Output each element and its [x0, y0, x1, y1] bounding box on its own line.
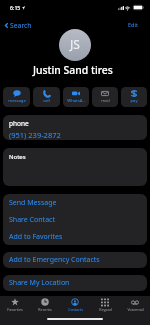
- staticText: 6:15: [10, 4, 21, 11]
- button[interactable]: Message: [3, 87, 30, 107]
- button[interactable]: Notes: [3, 148, 147, 186]
- staticText: Share My Location: [9, 278, 70, 288]
- staticText: phone: [9, 119, 29, 128]
- staticText: message: [8, 98, 26, 104]
- staticText: (951) 239-2872: [9, 130, 61, 140]
- button[interactable]: phone: [3, 115, 147, 140]
- staticText: WhatsA...: [67, 98, 86, 104]
- button[interactable]: Send Message: [3, 194, 147, 211]
- staticText: Search: [10, 21, 32, 30]
- staticText: Share Contact: [9, 215, 55, 225]
- staticText: Contacts: [68, 307, 83, 312]
- staticText: Recents: [38, 307, 52, 312]
- button[interactable]: Call: [33, 87, 60, 107]
- button[interactable]: Favorites: [0, 296, 30, 315]
- staticText: Justin Sand tires: [33, 63, 113, 77]
- staticText: Voicemail: [127, 307, 144, 312]
- button[interactable]: Mail: [92, 87, 118, 107]
- staticText: call: [43, 98, 50, 104]
- staticText: JS: [70, 36, 80, 52]
- button[interactable]: Edit: [118, 19, 150, 31]
- staticText: Add to Emergency Contacts: [9, 255, 100, 265]
- button[interactable]: Add to Favorites: [3, 228, 147, 245]
- staticText: Edit: [128, 21, 139, 29]
- button[interactable]: Search: [4, 19, 33, 32]
- button[interactable]: Share My Location: [3, 275, 147, 291]
- staticText: Favorites: [7, 307, 23, 312]
- staticText: Send Message: [9, 198, 57, 208]
- button[interactable]: Voicemail: [120, 296, 150, 315]
- staticText: Add to Favorites: [9, 232, 63, 242]
- button[interactable]: WhatsApp: [63, 87, 89, 107]
- button[interactable]: Keypad: [90, 296, 120, 315]
- staticText: Keypad: [99, 307, 112, 312]
- button[interactable]: Add to Emergency Contacts: [3, 252, 147, 268]
- staticText: mail: [101, 98, 110, 104]
- staticText: pay: [130, 98, 138, 104]
- button[interactable]: Contacts: [60, 296, 90, 315]
- button[interactable]: Share Contact: [3, 211, 147, 228]
- staticText: Notes: [9, 153, 26, 161]
- button[interactable]: Recents: [30, 296, 60, 315]
- button[interactable]: Pay: [121, 87, 147, 107]
